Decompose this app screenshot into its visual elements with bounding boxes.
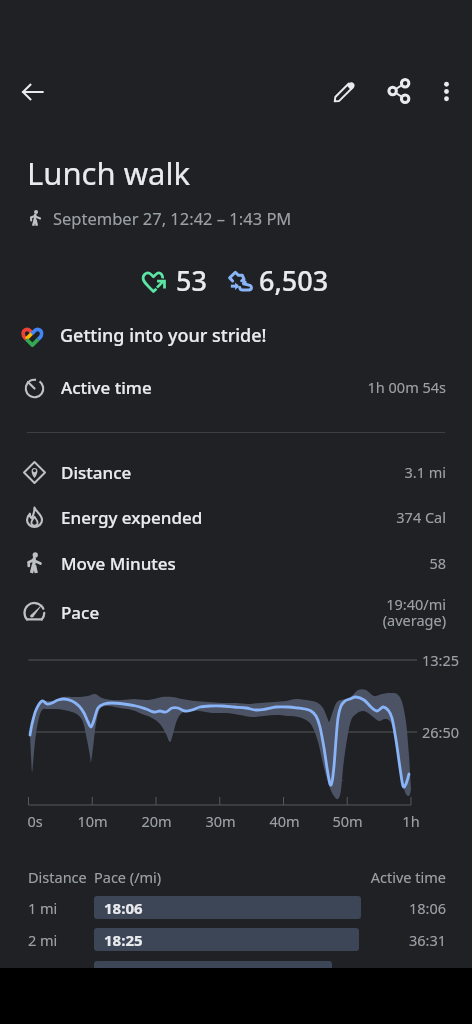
staticText: 53: [176, 262, 207, 296]
staticText: 0s: [27, 811, 43, 831]
staticText: 36:31: [408, 930, 446, 950]
staticText: 50m: [332, 811, 363, 831]
staticText: 18:06: [104, 898, 143, 918]
button[interactable]: Active time: [0, 364, 472, 410]
staticText: Pace: [61, 601, 100, 624]
staticText: 1h 00m 54s: [367, 377, 446, 397]
staticText: Lunch walk: [27, 152, 190, 194]
staticText: 3.1 mi: [404, 462, 446, 482]
staticText: Getting into your stride!: [60, 323, 267, 348]
staticText: 10m: [77, 811, 108, 831]
staticText: 18:25: [104, 930, 143, 950]
staticText: 1h: [402, 811, 420, 831]
button[interactable]: Share: [375, 67, 423, 115]
staticText: 1 mi: [28, 898, 58, 918]
button[interactable]: More options: [422, 67, 470, 115]
button[interactable]: Getting into your stride!: [0, 312, 472, 358]
button[interactable]: Edit: [320, 67, 368, 115]
staticText: Active time: [370, 867, 446, 887]
staticText: 20m: [141, 811, 172, 831]
staticText: 58: [429, 553, 446, 573]
staticText: 26:50: [422, 722, 460, 742]
staticText: 13:25: [422, 650, 460, 670]
staticText: 374 Cal: [396, 507, 446, 527]
staticText: 6,503: [259, 262, 329, 296]
button[interactable]: Move Minutes: [0, 540, 472, 586]
staticText: 2 mi: [28, 930, 58, 950]
staticText: Pace (/mi): [94, 867, 162, 887]
staticText: Distance: [61, 461, 132, 484]
button[interactable]: Pace: [0, 589, 472, 635]
staticText: September 27, 12:42 – 1:43 PM: [53, 207, 292, 229]
staticText: Move Minutes: [61, 552, 176, 575]
staticText: Distance: [28, 867, 87, 887]
staticText: 30m: [205, 811, 236, 831]
button[interactable]: Back: [9, 68, 57, 116]
staticText: 18:06: [408, 898, 446, 918]
staticText: Active time: [61, 376, 152, 399]
button[interactable]: Energy expended: [0, 494, 472, 540]
staticText: Energy expended: [61, 506, 203, 529]
button[interactable]: Distance: [0, 449, 472, 495]
staticText: 40m: [269, 811, 300, 831]
staticText: 19:40/mi (average): [382, 594, 446, 631]
